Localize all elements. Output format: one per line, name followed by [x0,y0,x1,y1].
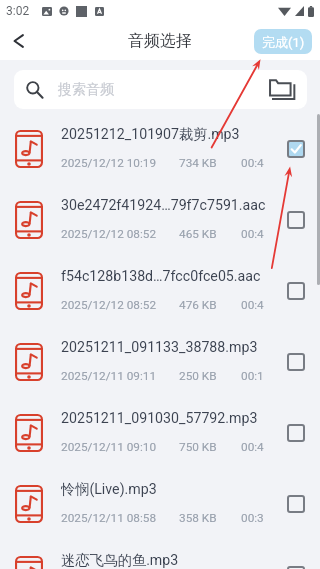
button[interactable]: Browse folder [257,70,307,109]
staticText: f54c128b138d…7fcc0fce05.aac [61,268,261,285]
button[interactable]: Selected [272,113,320,184]
button[interactable]: Select [272,255,320,326]
staticText: 3:02 [6,4,30,18]
button[interactable]: Select [272,184,320,255]
button[interactable]: Back [0,22,38,60]
staticText: 00:4 [241,440,264,454]
staticText: 465 KB [179,227,217,241]
button[interactable]: Select [272,397,320,468]
staticText: 00:4 [241,156,264,170]
button[interactable]: Select [272,539,320,569]
button[interactable]: 20251212_101907裁剪.mp3 [0,113,320,184]
staticText: 250 KB [179,369,217,383]
staticText: 2025/12/12 10:19 [61,156,157,170]
staticText: 20251211_091030_57792.mp3 [61,410,258,427]
staticText: 00:4 [241,227,264,241]
staticText: 734 KB [179,156,217,170]
button[interactable]: 搜索音频 [14,70,257,109]
staticText: 476 KB [179,298,217,312]
staticText: 完成(1) [262,34,305,50]
staticText: 00:1 [241,369,264,383]
staticText: 2025/12/11 08:58 [61,511,157,525]
staticText: 2025/12/12 08:52 [61,227,157,241]
staticText: 00:3 [241,511,264,525]
staticText: 音频选择 [128,31,192,51]
staticText: 2025/12/11 09:11 [61,369,157,383]
staticText: 2025/12/12 08:52 [61,298,157,312]
staticText: 迷恋飞鸟的鱼.mp3 [61,551,179,569]
button[interactable]: 20251211_091030_57792.mp3 [0,397,320,468]
staticText: 358 KB [179,511,217,525]
button[interactable]: Select [272,468,320,539]
staticText: 怜悯(Live).mp3 [61,480,157,498]
staticText: 2025/12/11 09:10 [61,440,157,454]
button[interactable]: f54c128b138d…7fcc0fce05.aac [0,255,320,326]
button[interactable]: 20251211_091133_38788.mp3 [0,326,320,397]
staticText: 750 KB [179,440,217,454]
button[interactable]: 迷恋飞鸟的鱼.mp3 [0,539,320,569]
staticText: 30e2472f41924…79f7c7591.aac [61,197,266,214]
button[interactable]: 30e2472f41924…79f7c7591.aac [0,184,320,255]
staticText: 搜索音频 [58,81,114,99]
button[interactable]: 完成(1) [254,29,312,54]
button[interactable]: 怜悯(Live).mp3 [0,468,320,539]
staticText: 00:4 [241,298,264,312]
staticText: 20251211_091133_38788.mp3 [61,339,258,356]
button[interactable]: Select [272,326,320,397]
staticText: 20251212_101907裁剪.mp3 [61,125,240,143]
